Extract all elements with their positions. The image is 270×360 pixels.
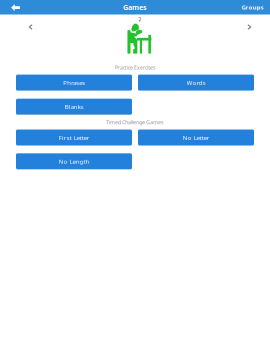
button[interactable]: Phrases [16, 75, 132, 91]
button[interactable]: Back [4, 0, 26, 15]
button[interactable]: Words [138, 75, 254, 91]
staticText: Practice Exercises [115, 64, 155, 71]
button[interactable]: First Letter [16, 129, 132, 145]
staticText: 2 [138, 16, 141, 23]
staticText: Words [186, 78, 205, 87]
staticText: No Length [58, 157, 89, 165]
staticText: Games [123, 2, 147, 12]
staticText: Blanks [64, 102, 83, 111]
button[interactable]: No Letter [138, 129, 254, 145]
staticText: Timed Challenge Games [106, 119, 164, 126]
button[interactable]: Groups [238, 0, 266, 14]
button[interactable]: No Length [16, 153, 132, 169]
button[interactable]: Blanks [16, 99, 132, 115]
staticText: First Letter [58, 133, 89, 142]
staticText: No Letter [182, 133, 209, 142]
staticText: Phrases [63, 78, 85, 87]
button[interactable]: Previous [20, 17, 40, 37]
staticText: Groups [241, 3, 263, 11]
button[interactable]: Next [239, 17, 259, 37]
